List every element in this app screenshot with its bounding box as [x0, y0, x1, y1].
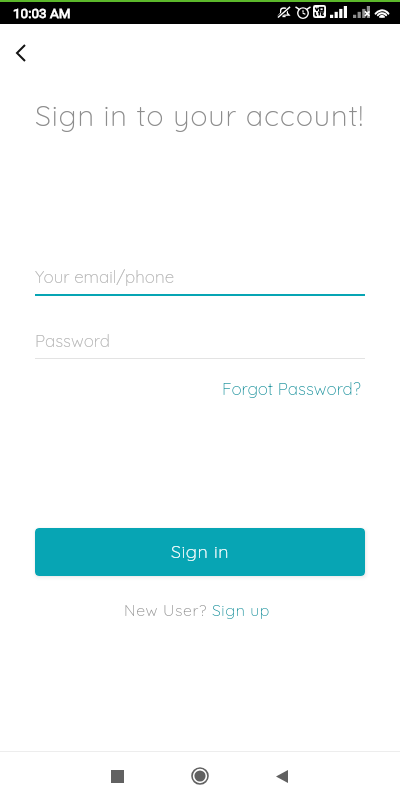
- button[interactable]: Sign in: [35, 528, 365, 576]
- staticText: Forgot Password?: [222, 378, 361, 399]
- staticText: Your email/phone: [35, 266, 175, 287]
- button[interactable]: Home: [176, 752, 224, 800]
- staticText: Sign in to your account!: [35, 97, 364, 133]
- staticText: 10:03 AM: [13, 5, 71, 21]
- staticText: Sign in: [171, 540, 230, 563]
- staticText: Password: [35, 330, 110, 351]
- button[interactable]: Forgot Password?: [222, 378, 361, 399]
- button[interactable]: Recent apps: [93, 752, 141, 800]
- button[interactable]: Back: [258, 752, 306, 800]
- button[interactable]: Back: [4, 36, 37, 69]
- staticText: New User?: [124, 600, 212, 620]
- staticText: Sign up: [212, 600, 270, 620]
- button[interactable]: Sign up: [212, 600, 270, 620]
